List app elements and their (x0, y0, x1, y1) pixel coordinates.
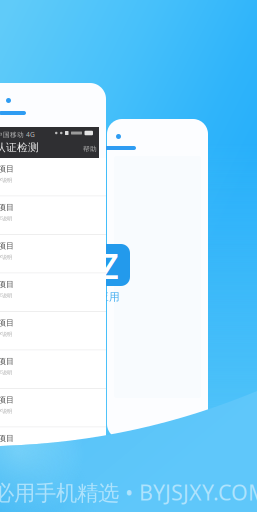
staticText: 检测项目 (0, 202, 14, 212)
staticText: 说明文字说明 (0, 177, 12, 183)
staticText: 说明文字说明 (0, 292, 12, 299)
staticText: 检测项目 (0, 433, 14, 443)
staticText: 应用 (98, 290, 120, 303)
staticText: 检测项目 (0, 164, 14, 174)
staticText: 检测项目 (0, 241, 14, 251)
staticText: 说明文字说明 (0, 369, 12, 376)
staticText: 中国移动 4G (0, 130, 35, 139)
staticText: 说明文字说明 (0, 331, 12, 337)
staticText: 检测项目 (0, 356, 14, 366)
staticText: Z (99, 244, 118, 288)
staticText: 必用手机精选 • BYJSJXY.COM (0, 478, 257, 506)
staticText: 认证检测 (0, 141, 39, 154)
staticText: 帮助 (83, 145, 97, 153)
staticText: 检测项目 (0, 279, 14, 289)
staticText: 说明文字说明 (0, 408, 12, 414)
staticText: 说明文字说明 (0, 485, 12, 491)
staticText: 检测项目 (0, 318, 14, 328)
staticText: 说明文字说明 (0, 254, 12, 260)
staticText: 说明文字说明 (0, 215, 12, 222)
staticText: 检测项目 (0, 395, 14, 405)
